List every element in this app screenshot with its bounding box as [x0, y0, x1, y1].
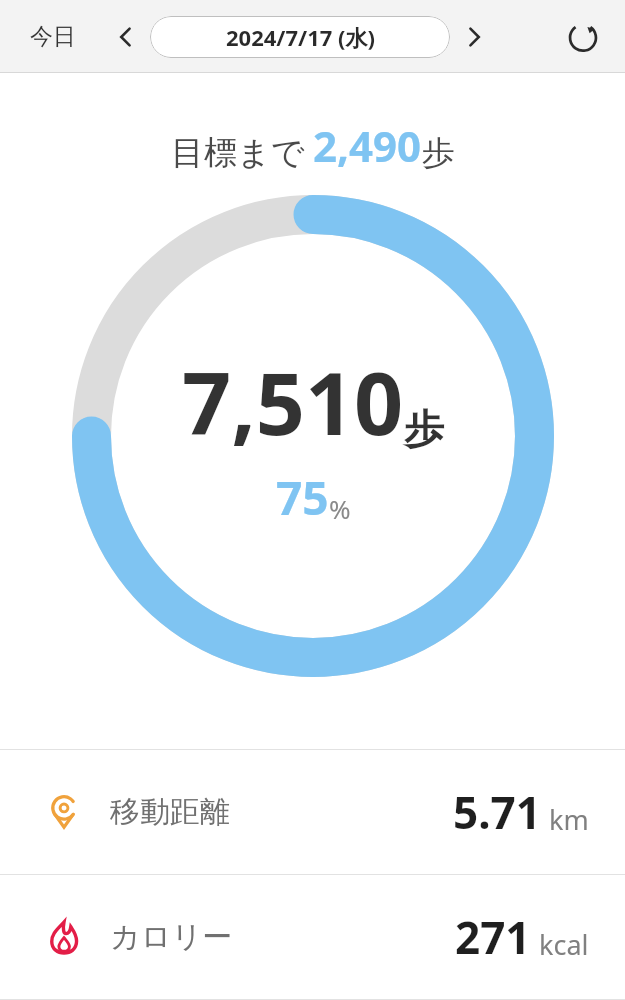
staticText: 歩 — [422, 132, 455, 174]
staticText: 5.71 — [453, 782, 541, 842]
staticText: 今日 — [30, 22, 76, 51]
staticText: 7,510 — [182, 343, 404, 460]
button[interactable]: 2024/7/17 (水) — [150, 16, 450, 58]
staticText: 2,490 — [313, 117, 422, 174]
staticText: 歩 — [404, 404, 444, 454]
button[interactable]: Previous day — [108, 19, 144, 55]
button[interactable]: 今日 — [20, 16, 86, 57]
staticText: % — [329, 491, 351, 526]
staticText: km — [549, 801, 589, 838]
button[interactable]: Refresh — [561, 15, 605, 59]
staticText: 271 — [455, 907, 531, 967]
staticText: 移動距離 — [110, 793, 230, 831]
staticText: 75 — [276, 466, 329, 529]
staticText: 2024/7/17 (水) — [226, 22, 375, 52]
staticText: 目標まで — [171, 132, 305, 174]
staticText: kcal — [539, 926, 589, 963]
button[interactable]: 移動距離 — [0, 750, 625, 874]
staticText: カロリー — [110, 918, 233, 956]
button[interactable]: カロリー — [0, 875, 625, 999]
button[interactable]: Next day — [456, 19, 492, 55]
